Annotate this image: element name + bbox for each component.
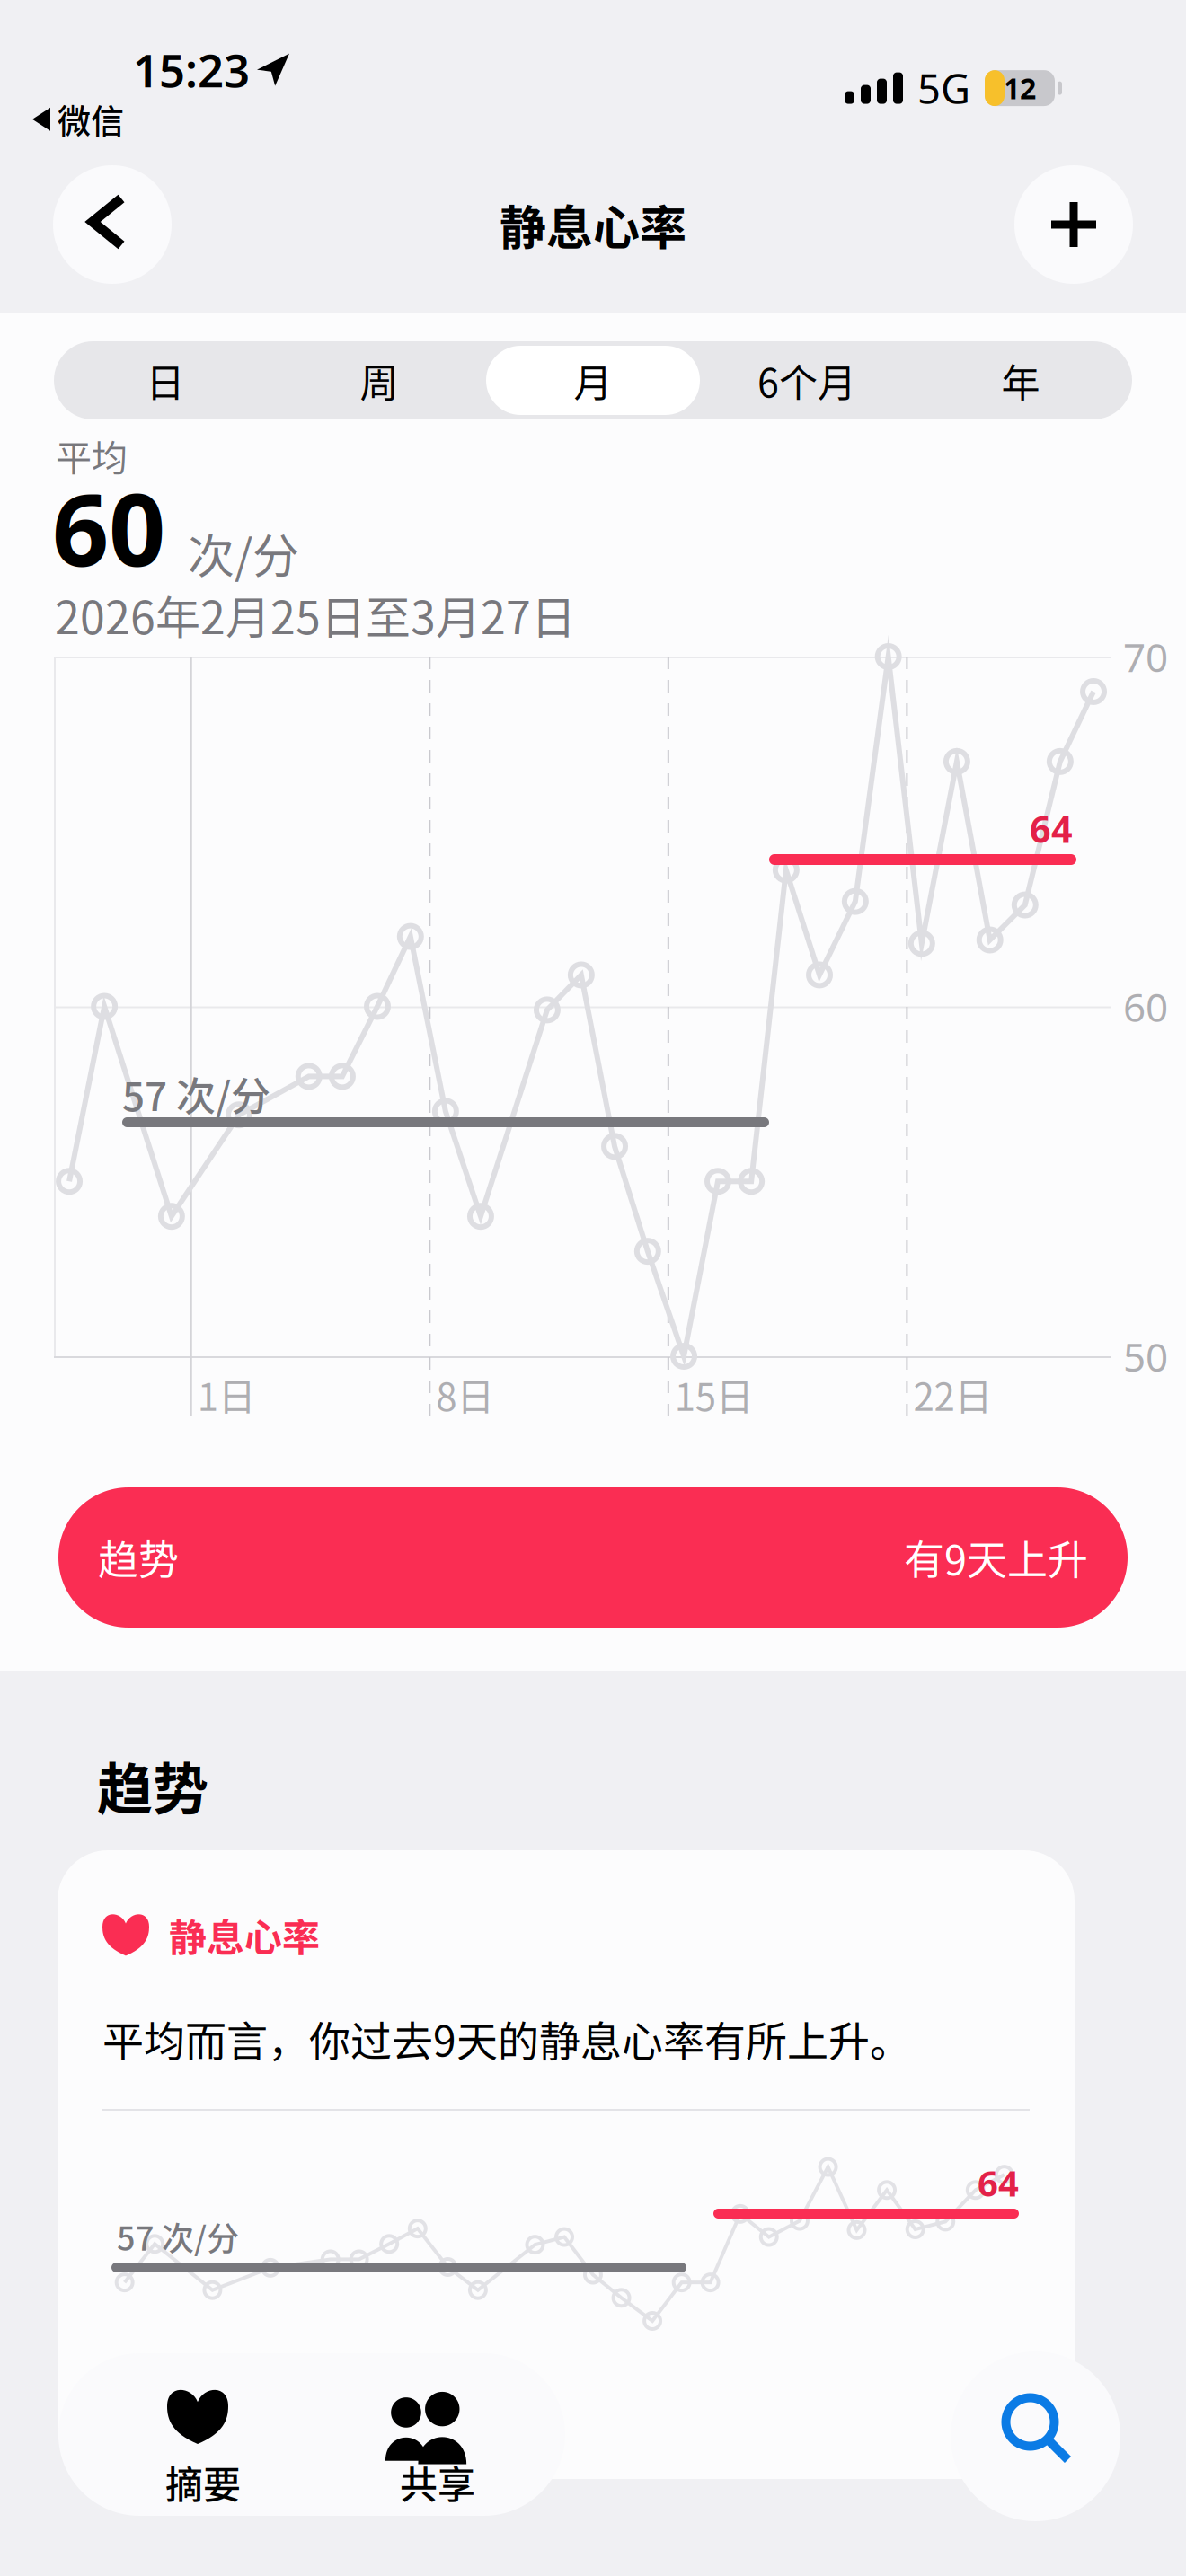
- staticText: 60: [52, 462, 165, 594]
- staticText: 微信: [58, 95, 124, 143]
- staticText: 趋势: [98, 1528, 179, 1587]
- staticText: 15:23: [133, 40, 250, 100]
- staticText: 22日: [913, 1367, 992, 1422]
- staticText: 平均而言，你过去9天的静息心率有所上升。: [102, 2008, 911, 2068]
- staticText: 64: [978, 2159, 1019, 2206]
- staticText: 57 次/分: [122, 1065, 270, 1122]
- staticText: 有9天上升: [904, 1528, 1088, 1587]
- staticText: 年: [1001, 352, 1040, 408]
- button[interactable]: 返回: [53, 165, 172, 284]
- staticText: 12: [1004, 69, 1036, 107]
- button[interactable]: 日: [58, 346, 272, 415]
- staticText: 1日: [197, 1367, 256, 1422]
- staticText: 15日: [675, 1367, 754, 1422]
- staticText: 摘要: [165, 2455, 241, 2509]
- staticText: 64: [1030, 804, 1073, 853]
- button[interactable]: 摘要: [122, 2353, 270, 2516]
- staticText: 8日: [436, 1367, 494, 1422]
- staticText: 57 次/分: [117, 2213, 239, 2260]
- staticText: 月: [574, 352, 612, 408]
- staticText: 2026年2月25日至3月27日: [55, 582, 576, 647]
- staticText: 静息心率: [169, 1908, 320, 1962]
- button[interactable]: 年: [914, 346, 1128, 415]
- staticText: 周: [360, 352, 398, 408]
- button[interactable]: 趋势: [58, 1487, 1128, 1628]
- button[interactable]: 月: [486, 346, 700, 415]
- button[interactable]: 周: [272, 346, 486, 415]
- staticText: 静息心率: [500, 191, 686, 258]
- button[interactable]: 共享: [351, 2353, 499, 2516]
- staticText: 平均: [56, 429, 128, 481]
- button[interactable]: 6个月: [700, 346, 914, 415]
- staticText: 50: [1123, 1330, 1168, 1383]
- button[interactable]: 添加: [1014, 165, 1133, 284]
- staticText: 6个月: [757, 352, 856, 408]
- staticText: 趋势: [97, 1745, 208, 1826]
- staticText: 70: [1123, 631, 1168, 683]
- staticText: 日: [146, 352, 185, 408]
- staticText: 共享: [400, 2455, 475, 2509]
- staticText: 60: [1123, 980, 1168, 1033]
- staticText: 5G: [917, 61, 970, 115]
- button[interactable]: 搜索: [951, 2351, 1120, 2521]
- staticText: 次/分: [188, 519, 299, 587]
